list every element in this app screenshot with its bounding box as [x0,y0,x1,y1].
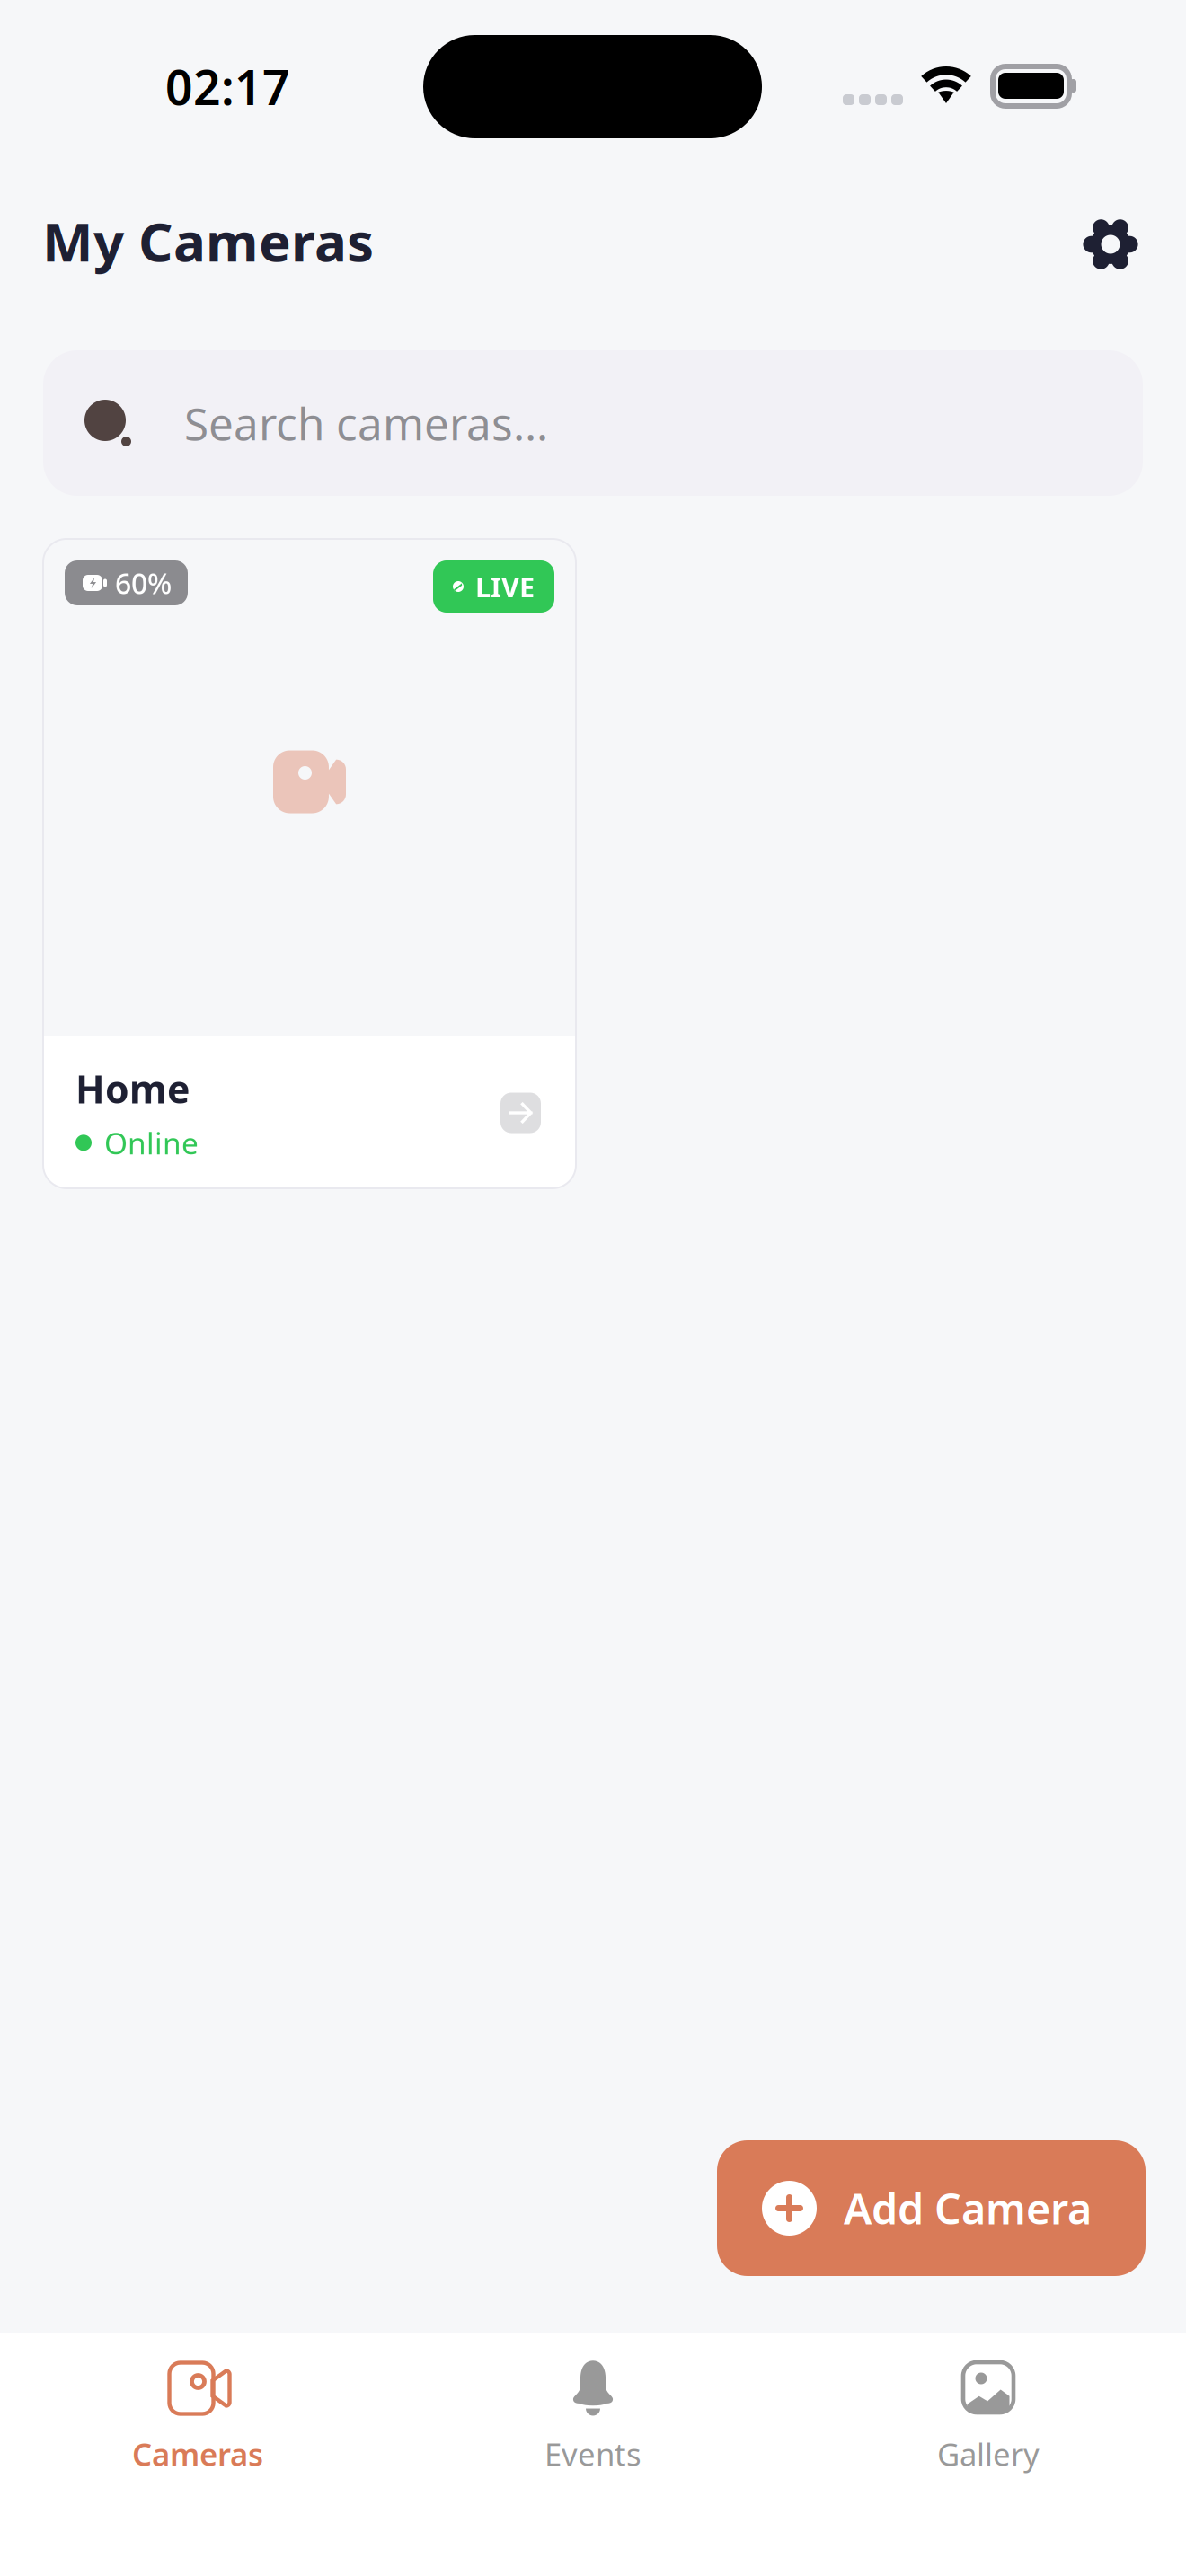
staticText: Home [75,1063,190,1114]
staticText: Events [544,2433,642,2475]
staticText: 02:17 [165,55,290,118]
staticText: Add Camera [844,2180,1092,2236]
button[interactable]: Search cameras... [43,350,1143,496]
button[interactable]: Gallery [791,2361,1186,2505]
button[interactable]: Add Camera [717,2140,1146,2276]
staticText: Online [104,1123,199,1163]
staticText: 60% [115,564,172,602]
button[interactable]: 60% [43,539,576,1188]
staticText: LIVE [475,568,535,605]
staticText: Gallery [937,2433,1040,2475]
button[interactable]: Events [395,2361,791,2505]
staticText: My Cameras [42,205,374,277]
button[interactable]: Settings [1073,203,1148,278]
staticText: Search cameras... [184,394,548,452]
button[interactable]: Cameras [0,2361,395,2505]
staticText: Cameras [132,2433,263,2475]
